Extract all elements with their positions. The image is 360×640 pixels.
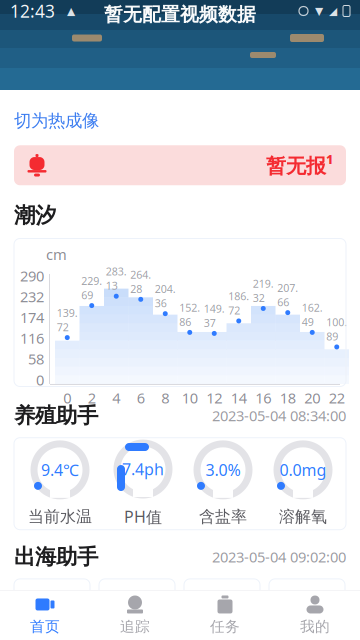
button[interactable]: 暂无报¹	[14, 145, 346, 185]
staticText: 出海助手	[14, 544, 98, 570]
staticText: 3.0%	[205, 459, 240, 480]
staticText: 174	[20, 308, 44, 327]
staticText: ◢	[329, 5, 337, 17]
staticText: 养殖助手	[14, 402, 98, 429]
staticText: ▲	[67, 5, 75, 17]
staticText: 20	[304, 388, 320, 407]
button[interactable]: 追踪	[90, 592, 180, 638]
staticText: 2023-05-04 09:02:00	[212, 547, 346, 567]
staticText: 100.89	[326, 315, 347, 343]
staticText: 12:43	[10, 0, 55, 22]
staticText: 切为热成像	[14, 110, 99, 131]
staticText: 162.49	[302, 301, 323, 329]
staticText: 264.28	[130, 267, 151, 296]
staticText: 232	[20, 287, 44, 306]
staticText: 4	[112, 388, 120, 407]
staticText: 我的	[300, 617, 330, 635]
button[interactable]: ☷	[269, 579, 345, 625]
staticText: 12	[206, 388, 222, 407]
staticText: 9.4℃	[41, 459, 79, 480]
staticText: 10	[182, 388, 198, 407]
staticText: 0	[36, 370, 44, 389]
staticText: 219.32	[253, 277, 274, 305]
staticText: 204.36	[155, 282, 176, 310]
staticText: 首页	[30, 617, 60, 635]
staticText: 溶解氧	[279, 507, 327, 527]
button[interactable]: 首页	[0, 592, 90, 638]
staticText: 283.13	[106, 264, 127, 293]
staticText: 2	[88, 388, 96, 407]
staticText: 当前水温	[28, 507, 92, 527]
staticText: 58	[28, 349, 44, 369]
staticText: 186.72	[228, 289, 249, 317]
staticText: 149.37	[204, 302, 225, 330]
button[interactable]: ➤	[184, 579, 260, 625]
staticText: 0.0mg	[279, 459, 326, 480]
staticText: 290	[20, 266, 44, 285]
staticText: 116	[20, 328, 44, 348]
staticText: 18	[280, 388, 296, 407]
staticText: 22	[329, 388, 345, 407]
staticText: cm	[46, 244, 67, 264]
staticText: 🌡	[20, 591, 44, 612]
button[interactable]: 🌡	[14, 579, 90, 625]
staticText: 16	[255, 388, 271, 407]
staticText: 降雨	[301, 591, 335, 613]
staticText: 任务	[210, 617, 240, 635]
staticText: 暂无报¹	[266, 152, 334, 179]
staticText: ▼	[315, 5, 323, 17]
staticText: 风力	[132, 591, 166, 613]
staticText: 暂无配置视频数据	[104, 3, 256, 26]
staticText: 6	[137, 388, 145, 407]
staticText: 2023-05-04 08:34:00	[212, 406, 346, 425]
button[interactable]: ☁	[99, 579, 175, 625]
staticText: 14	[231, 388, 247, 407]
button[interactable]: 我的	[270, 592, 360, 638]
staticText: 207.66	[277, 281, 298, 309]
staticText: 追踪	[120, 617, 150, 635]
staticText: 8	[161, 388, 169, 407]
button[interactable]: 切为热成像	[14, 106, 99, 135]
staticText: 152.86	[179, 301, 200, 329]
staticText: 229.69	[81, 274, 102, 302]
button[interactable]: 任务	[180, 592, 270, 638]
staticText: 潮汐	[14, 202, 56, 228]
staticText: 0	[63, 388, 71, 407]
staticText: PH值	[124, 506, 162, 527]
staticText: 139.72	[57, 306, 78, 334]
staticText: 气温	[49, 591, 83, 613]
staticText: 方向	[215, 591, 249, 613]
staticText: 7.4ph	[122, 458, 164, 480]
staticText: 含盐率	[199, 507, 247, 527]
